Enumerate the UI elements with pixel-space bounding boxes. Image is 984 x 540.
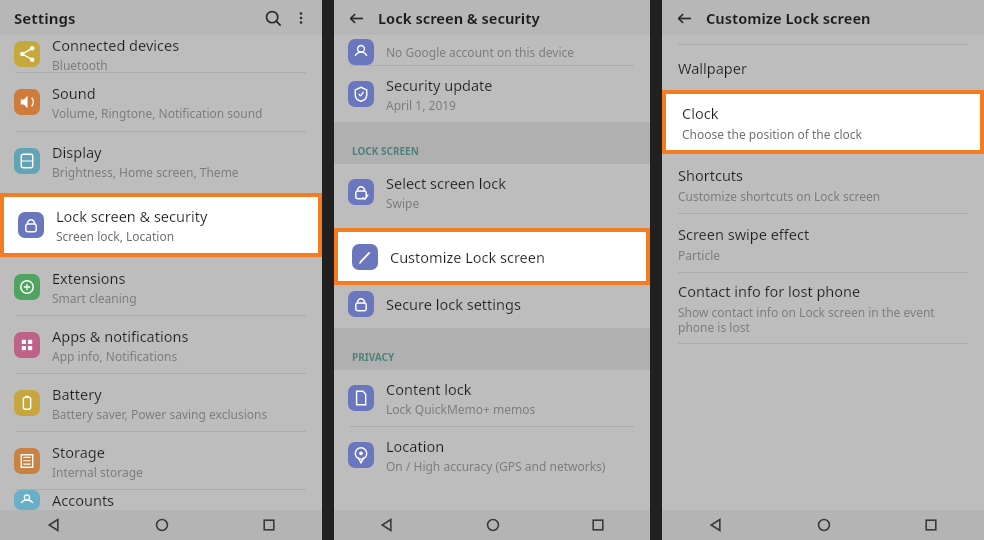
button[interactable]: Shortcuts: [662, 155, 984, 213]
staticText: Battery saver, Power saving exclusions: [52, 406, 268, 422]
button[interactable]: Home: [440, 510, 545, 540]
staticText: Shortcuts: [678, 165, 744, 185]
button[interactable]: Wallpaper: [662, 45, 984, 91]
staticText: Apps & notifications: [52, 326, 189, 346]
staticText: Smart cleaning: [52, 290, 137, 306]
staticText: Particle: [678, 247, 721, 263]
button[interactable]: Storage: [0, 432, 322, 489]
staticText: Extensions: [52, 268, 126, 288]
staticText: Volume, Ringtone, Notification sound: [52, 105, 263, 121]
button[interactable]: Back: [342, 4, 370, 32]
button[interactable]: Connected devices: [0, 35, 322, 72]
button[interactable]: Recents: [877, 510, 984, 540]
button[interactable]: Back: [0, 510, 108, 540]
staticText: Choose the position of the clock: [682, 126, 862, 142]
staticText: LOCK SCREEN: [352, 144, 419, 158]
staticText: Customize Lock screen: [706, 8, 871, 28]
staticText: Content lock: [386, 379, 472, 399]
staticText: Lock screen & security: [56, 206, 208, 226]
staticText: Brightness, Home screen, Theme: [52, 164, 239, 180]
button[interactable]: Location: [334, 427, 650, 483]
button[interactable]: Contact info for lost phone: [662, 273, 984, 343]
staticText: Lock screen & security: [378, 8, 540, 28]
staticText: Sound: [52, 83, 96, 103]
button[interactable]: Clock: [666, 94, 980, 150]
staticText: Settings: [14, 8, 76, 28]
staticText: Storage: [52, 442, 105, 462]
staticText: No Google account on this device: [386, 44, 575, 60]
staticText: Contact info for lost phone: [678, 281, 861, 301]
staticText: Internal storage: [52, 464, 143, 480]
staticText: Select screen lock: [386, 173, 506, 193]
staticText: PRIVACY: [352, 350, 395, 364]
button[interactable]: Recents: [545, 510, 650, 540]
staticText: Customize Lock screen: [390, 247, 545, 267]
staticText: Show contact info on Lock screen in the …: [678, 304, 935, 335]
button[interactable]: Lock screen & security: [4, 197, 318, 253]
button[interactable]: Back: [662, 510, 770, 540]
button[interactable]: Extensions: [0, 258, 322, 315]
staticText: Screen lock, Location: [56, 228, 175, 244]
staticText: Lock QuickMemo+ memos: [386, 401, 536, 417]
staticText: April 1, 2019: [386, 97, 456, 113]
staticText: Accounts: [52, 490, 115, 510]
button[interactable]: Battery: [0, 374, 322, 431]
staticText: Customize shortcuts on Lock screen: [678, 188, 881, 204]
staticText: Wallpaper: [678, 58, 747, 78]
button[interactable]: Display: [0, 132, 322, 190]
button[interactable]: More options: [288, 5, 314, 31]
button[interactable]: Apps & notifications: [0, 316, 322, 373]
staticText: On / High accuracy (GPS and networks): [386, 458, 606, 474]
staticText: Clock: [682, 103, 719, 123]
button[interactable]: Content lock: [334, 370, 650, 426]
staticText: Security update: [386, 75, 493, 95]
button[interactable]: Customize Lock screen: [338, 232, 646, 281]
button[interactable]: No Google account on this device: [334, 35, 650, 65]
staticText: Screen swipe effect: [678, 224, 810, 244]
button[interactable]: Sound: [0, 73, 322, 131]
staticText: Location: [386, 436, 445, 456]
staticText: Display: [52, 142, 102, 162]
button[interactable]: Screen swipe effect: [662, 214, 984, 272]
button[interactable]: Back: [334, 510, 440, 540]
staticText: App info, Notifications: [52, 348, 178, 364]
button[interactable]: Home: [770, 510, 877, 540]
button[interactable]: Home: [108, 510, 215, 540]
staticText: Connected devices: [52, 35, 180, 55]
staticText: Swipe: [386, 195, 420, 211]
button[interactable]: Security update: [334, 66, 650, 122]
staticText: Secure lock settings: [386, 294, 521, 314]
staticText: Bluetooth: [52, 57, 108, 72]
button[interactable]: Secure lock settings: [334, 280, 650, 328]
button[interactable]: Select screen lock: [334, 164, 650, 220]
button[interactable]: Search: [258, 3, 288, 33]
button[interactable]: Back: [670, 4, 698, 32]
button[interactable]: Accounts: [0, 490, 322, 510]
staticText: Battery: [52, 384, 102, 404]
button[interactable]: Recents: [215, 510, 322, 540]
